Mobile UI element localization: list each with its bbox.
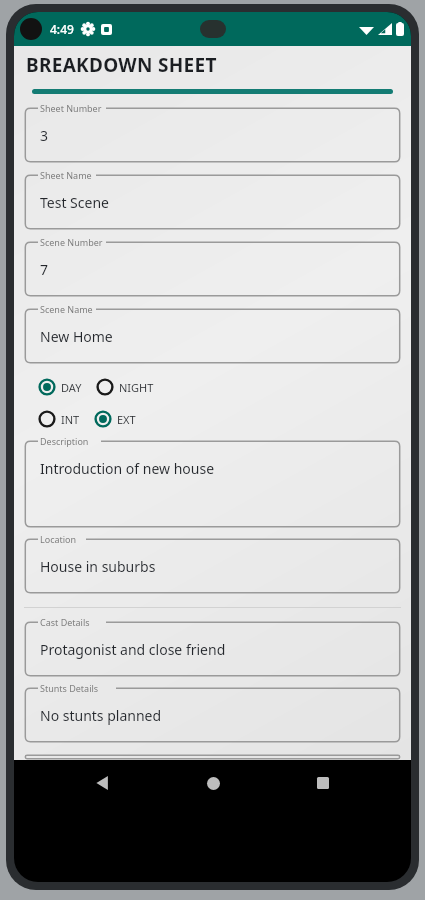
button[interactable]: Recent apps <box>301 761 345 805</box>
staticText: 4:49 <box>50 21 74 37</box>
staticText: Protagonist and close friend <box>40 640 226 659</box>
button[interactable]: NIGHT <box>96 378 154 396</box>
staticText: Cast Details <box>40 616 90 628</box>
staticText: 3 <box>40 126 49 145</box>
button[interactable]: Location <box>24 538 401 594</box>
staticText: DAY <box>61 380 82 395</box>
staticText: INT <box>61 412 80 427</box>
button[interactable]: Sheet Number <box>24 107 401 163</box>
button[interactable]: Description <box>24 440 401 528</box>
button[interactable]: INT <box>38 410 80 428</box>
staticText: 7 <box>40 260 49 279</box>
button[interactable]: DAY <box>38 378 82 396</box>
button[interactable]: Scene Name <box>24 308 401 364</box>
staticText: BREAKDOWN SHEET <box>26 52 217 78</box>
staticText: Location <box>40 533 77 545</box>
staticText: House in suburbs <box>40 557 156 576</box>
staticText: Introduction of new house <box>40 459 215 478</box>
staticText: NIGHT <box>119 380 154 395</box>
staticText: No stunts planned <box>40 706 162 725</box>
staticText: Sheet Name <box>40 169 92 181</box>
staticText: Sheet Number <box>40 102 102 114</box>
staticText: Test Scene <box>40 193 109 212</box>
staticText: Stunts Details <box>40 682 99 694</box>
staticText: Scene Number <box>40 236 103 248</box>
button[interactable]: Back <box>80 761 124 805</box>
staticText: New Home <box>40 327 113 346</box>
button[interactable]: Stunts Details <box>24 687 401 743</box>
staticText: EXT <box>117 412 136 427</box>
staticText: Description <box>40 435 89 447</box>
staticText: Scene Name <box>40 303 93 315</box>
button[interactable]: Scene Number <box>24 241 401 297</box>
button[interactable]: Sheet Name <box>24 174 401 230</box>
button[interactable]: Home <box>191 761 235 805</box>
button[interactable]: EXT <box>94 410 136 428</box>
button[interactable] <box>24 754 401 760</box>
button[interactable]: Cast Details <box>24 621 401 677</box>
